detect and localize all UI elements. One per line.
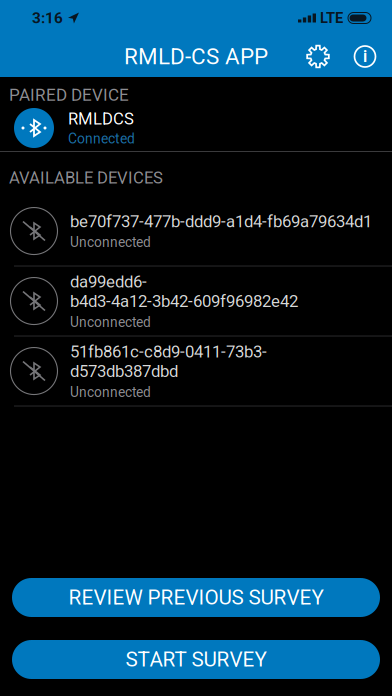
staticText: Unconnected (70, 384, 151, 400)
staticText: 3:16 (32, 9, 63, 27)
staticText: RMLDCS (68, 109, 134, 129)
staticText: RMLD-CS APP (124, 43, 268, 70)
button[interactable]: Settings (300, 39, 336, 73)
staticText: be70f737-477b-ddd9-a1d4-fb69a79634d1 (70, 212, 372, 231)
button[interactable]: RMLDCS (0, 105, 392, 151)
staticText: da99edd6- b4d3-4a12-3b42-609f96982e42 (70, 272, 298, 311)
staticText: Unconnected (70, 234, 151, 250)
staticText: Unconnected (70, 314, 151, 330)
button[interactable]: START SURVEY (12, 640, 380, 679)
staticText: LTE (320, 9, 343, 27)
staticText: REVIEW PREVIOUS SURVEY (68, 585, 323, 610)
button[interactable]: REVIEW PREVIOUS SURVEY (12, 578, 380, 617)
staticText: START SURVEY (125, 647, 266, 672)
button[interactable]: da99edd6- b4d3-4a12-3b42-609f96982e42 (0, 266, 392, 335)
button[interactable]: 51fb861c-c8d9-0411-73b3- d573db387dbd (0, 336, 392, 405)
staticText: i (363, 47, 367, 66)
staticText: 51fb861c-c8d9-0411-73b3- d573db387dbd (70, 342, 267, 381)
staticText: PAIRED DEVICE (9, 85, 129, 105)
button[interactable]: Info (347, 39, 383, 73)
staticText: Connected (68, 131, 135, 147)
staticText: AVAILABLE DEVICES (9, 168, 163, 187)
button[interactable]: be70f737-477b-ddd9-a1d4-fb69a79634d1 (0, 196, 392, 265)
